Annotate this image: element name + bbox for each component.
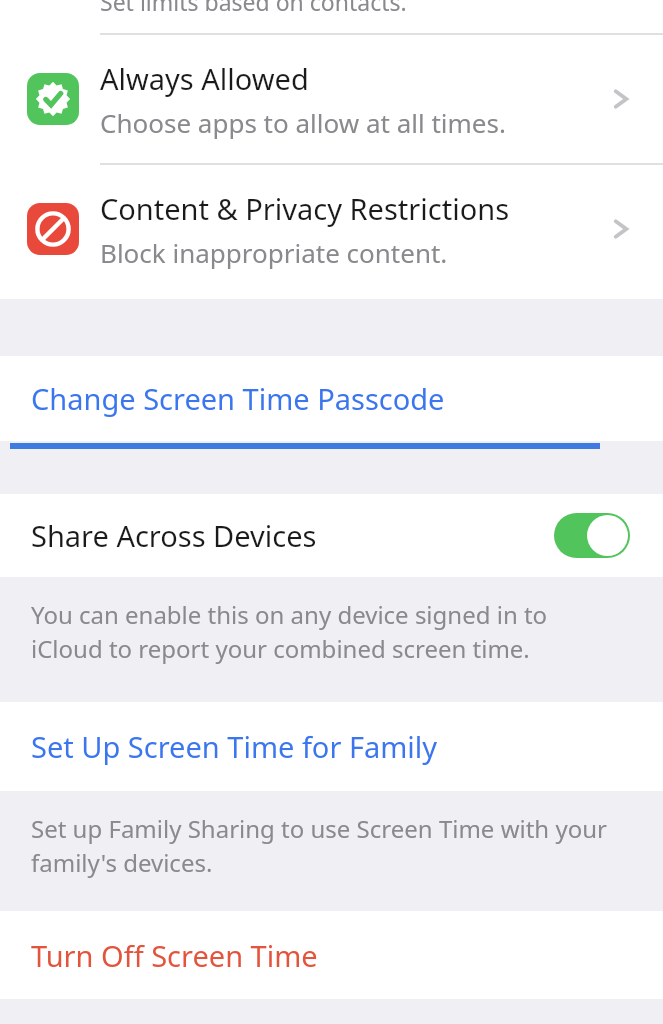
staticText: Set up Family Sharing to use Screen Time… [31,812,613,880]
button[interactable]: Set Up Screen Time for Family [0,702,663,791]
staticText: Turn Off Screen Time [31,936,318,975]
button[interactable]: Content & Privacy Restrictions [0,165,663,293]
staticText: Set limits based on contacts. [100,0,407,17]
button[interactable]: Always Allowed [0,35,663,163]
staticText: Set Up Screen Time for Family [31,727,438,766]
staticText: Share Across Devices [31,516,554,555]
staticText: Block inappropriate content. [100,235,448,270]
button[interactable]: Turn Off Screen Time [0,911,663,999]
button[interactable]: Change Screen Time Passcode [0,356,663,441]
staticText: Content & Privacy Restrictions [100,189,510,228]
staticText: Choose apps to allow at all times. [100,105,506,140]
staticText: Change Screen Time Passcode [31,379,445,418]
staticText: Always Allowed [100,59,309,98]
staticText: You can enable this on any device signed… [31,598,613,666]
other: Share Across Devices toggle, on [554,513,630,558]
button[interactable]: Share Across Devices [0,494,663,577]
